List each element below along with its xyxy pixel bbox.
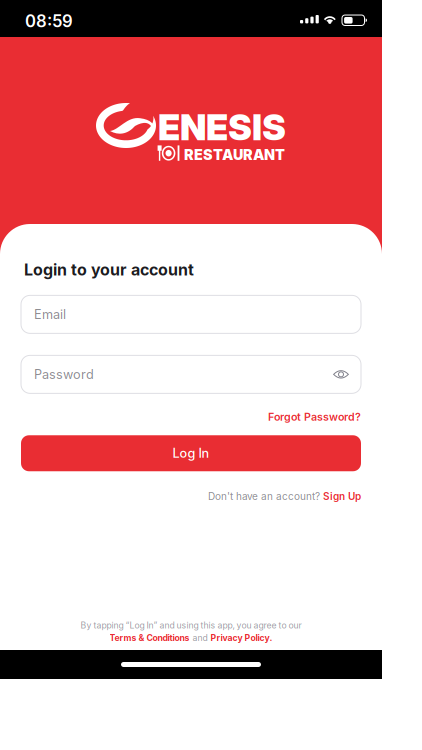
button[interactable]: Sign Up	[323, 490, 361, 502]
staticText: RESTAURANT	[184, 146, 285, 163]
button[interactable]: Forgot Password?	[268, 410, 361, 423]
staticText: Password	[34, 367, 94, 382]
staticText: Email	[34, 307, 66, 322]
button[interactable]: Terms & Conditions	[109, 632, 189, 643]
staticText: ENESIS	[158, 106, 286, 149]
button[interactable]: Privacy Policy.	[210, 632, 272, 643]
staticText: By tapping “Log In” and using this app, …	[80, 620, 301, 630]
staticText: and	[192, 632, 207, 643]
button[interactable]: Log In	[21, 435, 361, 471]
staticText: Sign Up	[323, 490, 361, 502]
staticText: 08:59	[25, 11, 73, 31]
staticText: Log In	[172, 446, 209, 461]
staticText: Forgot Password?	[268, 410, 361, 423]
staticText: Don't have an account?	[208, 490, 323, 502]
staticText: Terms & Conditions	[109, 632, 189, 643]
staticText: Login to your account	[24, 260, 194, 279]
staticText: Privacy Policy.	[210, 632, 272, 643]
